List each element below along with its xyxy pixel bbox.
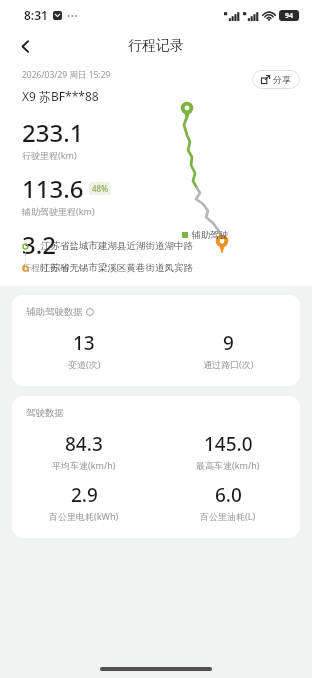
- staticText: 辅助驾驶: [192, 229, 228, 240]
- staticText: 辅助驾驶数据: [26, 306, 83, 318]
- staticText: 江苏省盐城市建湖县近湖街道湖中路: [41, 240, 193, 252]
- staticText: 通过路口(次): [203, 358, 254, 370]
- staticText: 233.1: [22, 116, 84, 149]
- staticText: 6.0: [215, 482, 242, 508]
- staticText: 驾驶数据: [26, 407, 64, 419]
- staticText: 分享: [273, 74, 291, 85]
- staticText: 辅助驾驶里程(km): [22, 205, 95, 217]
- staticText: 9: [223, 330, 234, 356]
- staticText: 13: [73, 330, 95, 356]
- staticText: 145.0: [204, 431, 253, 457]
- staticText: 行程时长(h): [22, 261, 69, 273]
- staticText: 48%: [92, 183, 108, 194]
- staticText: 2.9: [71, 482, 98, 508]
- staticText: 94: [285, 11, 294, 21]
- staticText: 变道(次): [68, 358, 101, 370]
- staticText: 最高车速(km/h): [196, 459, 260, 471]
- staticText: 84.3: [65, 431, 103, 457]
- staticText: 2026/03/29 周日 15:29: [22, 69, 111, 81]
- staticText: 113.6: [22, 172, 84, 205]
- button[interactable]: 分享: [252, 70, 300, 89]
- staticText: 百公里油耗(L): [200, 510, 256, 522]
- staticText: 3.2: [22, 228, 56, 261]
- button[interactable]: Back: [9, 30, 41, 62]
- staticText: 平均车速(km/h): [52, 459, 116, 471]
- staticText: 行驶里程(km): [22, 149, 77, 161]
- staticText: 百公里电耗(kWh): [49, 510, 119, 522]
- staticText: 江苏省无锡市梁溪区黄巷街道凤宾路: [41, 262, 193, 274]
- staticText: X9 苏BF***88: [22, 88, 99, 104]
- staticText: 行程记录: [128, 37, 184, 55]
- staticText: 8:31: [24, 7, 48, 23]
